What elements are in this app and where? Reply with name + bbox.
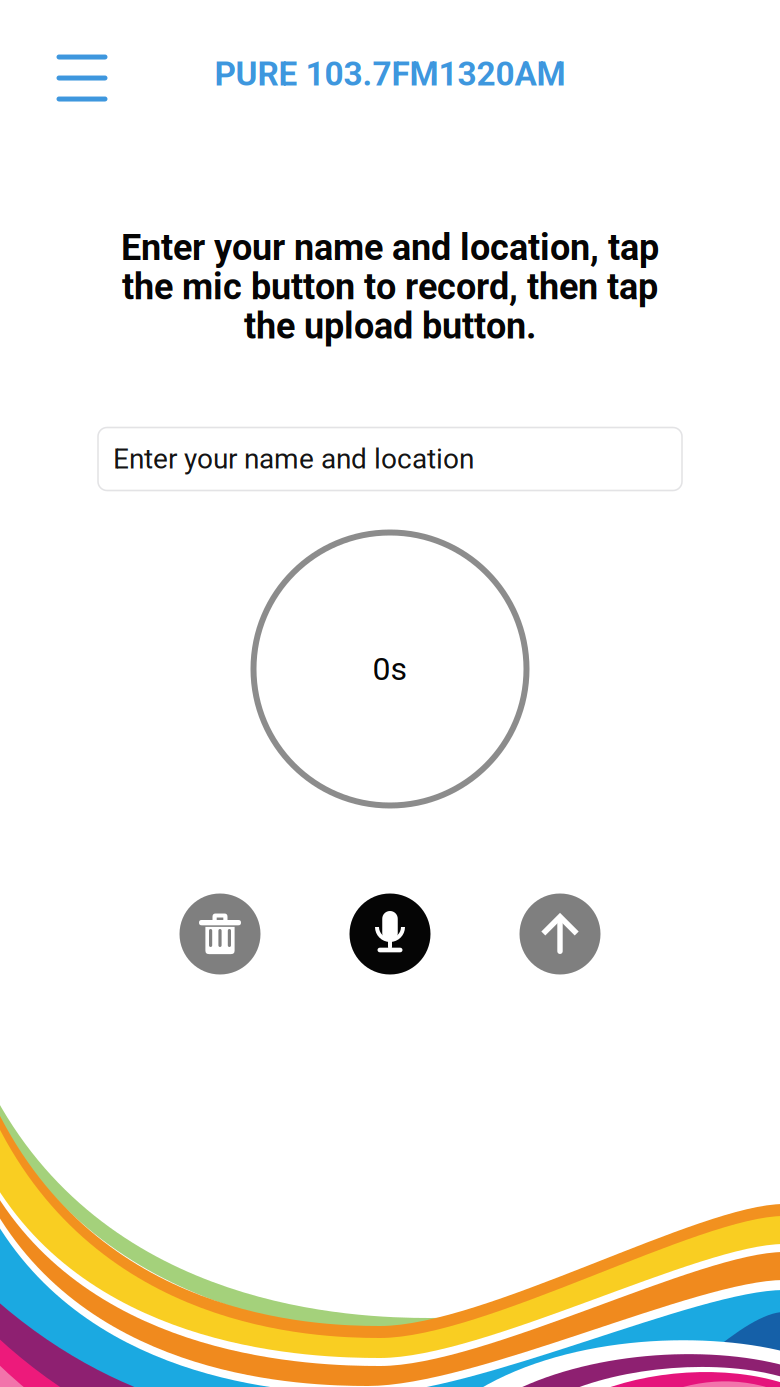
staticText: the mic button to record, then tap <box>122 266 658 308</box>
staticText: Enter your name and location, tap <box>121 227 659 269</box>
button[interactable]: Upload recording <box>519 893 600 974</box>
button[interactable]: Record <box>349 893 430 974</box>
button[interactable]: Menu <box>42 40 121 115</box>
staticText: Enter your name and location <box>113 443 474 475</box>
button[interactable]: Delete recording <box>179 893 260 974</box>
staticText: 0s <box>372 650 407 688</box>
staticText: the upload button. <box>244 305 536 347</box>
staticText: PURE 103.7FM1320AM <box>214 54 565 94</box>
